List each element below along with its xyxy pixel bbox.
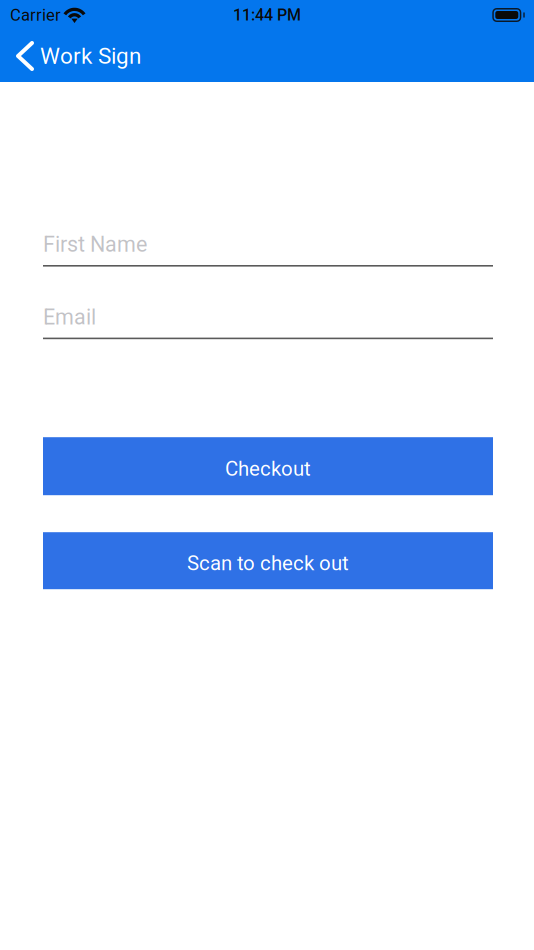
button[interactable]: First Name [43, 223, 493, 267]
staticText: First Name [43, 232, 147, 257]
staticText: Email [43, 304, 96, 330]
button[interactable]: Scan to check out [43, 532, 493, 589]
staticText: Carrier [10, 5, 61, 25]
staticText: Checkout [225, 457, 311, 481]
button[interactable]: Checkout [43, 437, 493, 495]
staticText: 11:44 PM [233, 6, 301, 24]
button[interactable]: Back [18, 36, 151, 76]
staticText: Scan to check out [187, 551, 349, 575]
staticText: Work Sign [40, 43, 141, 69]
button[interactable]: Email [43, 296, 493, 339]
